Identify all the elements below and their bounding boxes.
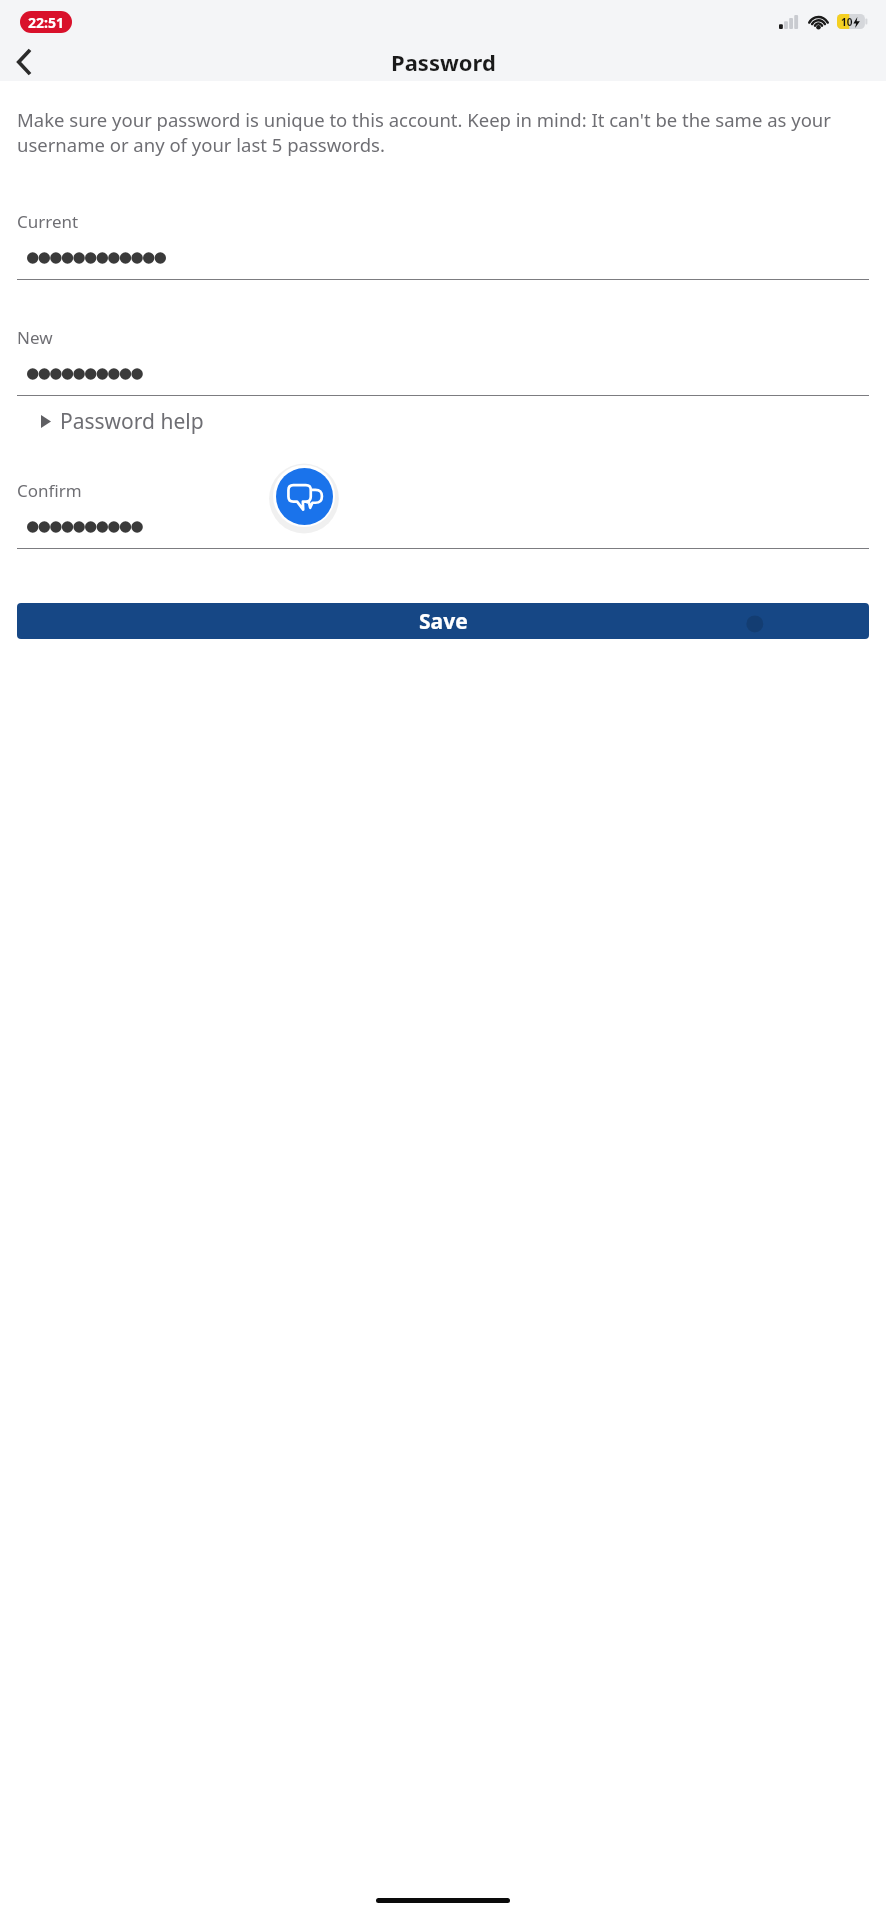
staticText: Save — [419, 607, 468, 636]
staticText: Current — [17, 210, 79, 233]
staticText: New — [17, 326, 53, 349]
button[interactable] — [17, 515, 869, 539]
staticText: Password — [391, 47, 496, 77]
staticText: Password help — [60, 407, 204, 436]
button[interactable]: Chat — [276, 468, 333, 525]
button[interactable]: Password help — [17, 400, 218, 443]
staticText: 22:51 — [28, 13, 64, 32]
button[interactable]: Back — [0, 43, 48, 81]
staticText: Make sure your password is unique to thi… — [17, 107, 873, 157]
button[interactable]: Save — [17, 603, 869, 639]
staticText: Confirm — [17, 479, 82, 502]
button[interactable] — [17, 246, 869, 270]
button[interactable] — [17, 362, 869, 386]
staticText: 10 — [841, 15, 853, 29]
